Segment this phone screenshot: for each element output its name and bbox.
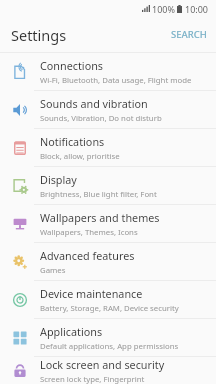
button[interactable]: SEARCH [162,21,216,48]
staticText: Wallpapers and themes [40,210,160,225]
button[interactable]: Wallpapers and themes [0,205,216,242]
staticText: 100% [152,3,175,15]
button[interactable]: Applications [0,319,216,356]
button[interactable]: Advanced features [0,243,216,280]
button[interactable]: Device maintenance [0,281,216,318]
button[interactable]: Connections [0,53,216,90]
staticText: Brightness, Blue light filter, Font [40,189,157,200]
staticText: Device maintenance [40,286,143,301]
staticText: Battery, Storage, RAM, Device security [40,303,179,314]
staticText: Block, allow, prioritise [40,151,120,162]
staticText: Sounds and vibration [40,96,148,111]
staticText: Default applications, App permissions [40,341,179,352]
staticText: Applications [40,324,103,339]
staticText: Screen lock type, Fingerprint [40,374,145,384]
button[interactable]: Sounds and vibration [0,91,216,128]
button[interactable]: Notifications [0,129,216,166]
staticText: Lock screen and security [40,357,165,372]
staticText: Sounds, Vibration, Do not disturb [40,113,162,124]
staticText: Settings [11,25,67,45]
staticText: 10:00 [185,3,209,15]
staticText: Display [40,172,77,187]
staticText: Wallpapers, Themes, Icons [40,227,138,238]
staticText: SEARCH [171,28,207,41]
button[interactable]: Lock screen and security [0,357,216,384]
staticText: Games [40,265,66,276]
staticText: Wi-Fi, Bluetooth, Data usage, Flight mod… [40,75,192,86]
button[interactable]: Display [0,167,216,204]
staticText: Connections [40,58,104,73]
staticText: Notifications [40,134,105,149]
staticText: Advanced features [40,248,135,263]
